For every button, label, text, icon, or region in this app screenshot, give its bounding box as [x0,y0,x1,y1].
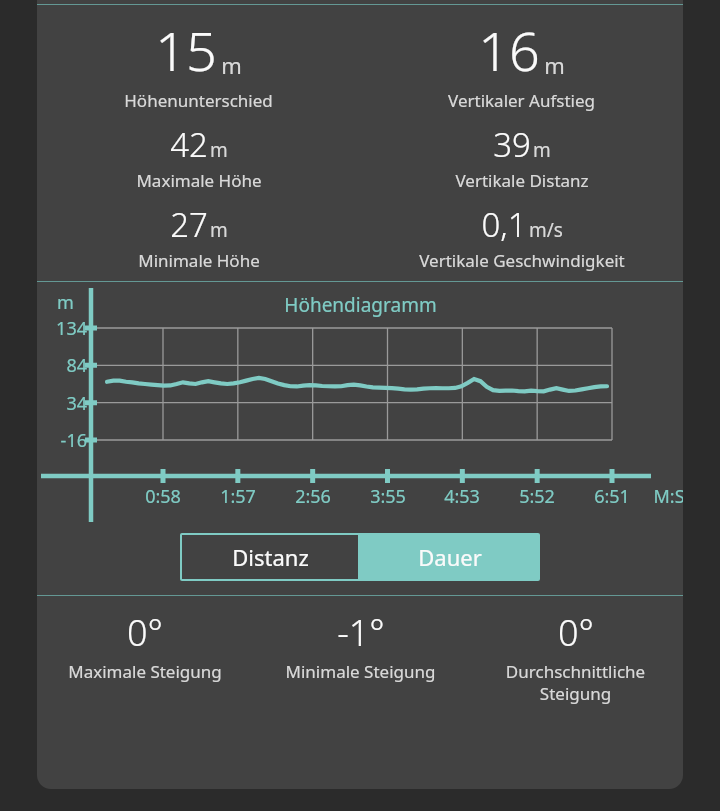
staticText: 15 [155,13,217,87]
staticText: -1° [337,608,385,657]
staticText: m [544,50,565,80]
staticText: M:S [653,484,683,509]
staticText: -16 [60,428,87,453]
staticText: 0,1 [481,202,527,247]
staticText: 0:58 [145,484,181,509]
button[interactable]: Distanz [182,535,358,579]
staticText: Vertikale Distanz [455,169,589,192]
staticText: m/s [529,217,563,243]
button[interactable]: Dauer [360,533,540,581]
staticText: 6:51 [594,484,630,509]
staticText: 5:52 [519,484,555,509]
staticText: 1:57 [220,484,256,509]
staticText: Vertikaler Aufstieg [448,89,595,112]
staticText: 0° [558,608,594,657]
staticText: 0° [127,608,163,657]
staticText: 34 [66,391,87,416]
staticText: Durchschnittliche Steigung [472,660,679,705]
staticText: Distanz [232,542,309,572]
staticText: 84 [66,353,87,378]
staticText: Minimale Höhe [138,249,260,272]
staticText: 39 [493,122,531,167]
staticText: Höhenunterschied [124,89,273,112]
staticText: Maximale Steigung [41,660,249,683]
staticText: 2:56 [295,484,331,509]
staticText: m [210,137,228,163]
staticText: Dauer [418,542,482,572]
staticText: Maximale Höhe [136,169,262,192]
staticText: 134 [56,316,87,341]
staticText: Höhendiagramm [284,292,437,318]
staticText: 16 [478,13,540,87]
staticText: 3:55 [370,484,406,509]
staticText: Vertikale Geschwindigkeit [419,249,625,272]
staticText: 27 [170,202,208,247]
staticText: Minimale Steigung [257,660,464,683]
staticText: m [210,217,228,243]
staticText: m [533,137,551,163]
staticText: 42 [170,122,208,167]
staticText: m [221,50,242,80]
staticText: 4:53 [444,484,480,509]
staticText: m [57,290,74,315]
